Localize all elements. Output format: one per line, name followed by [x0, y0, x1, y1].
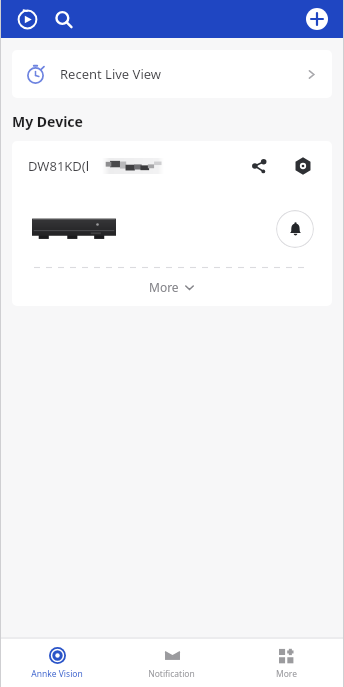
button[interactable]: Notification [114, 639, 229, 687]
button[interactable]: Recent Live View [12, 50, 332, 98]
button[interactable]: Search [48, 4, 78, 34]
button[interactable]: Annke Vision [0, 639, 114, 687]
staticText: Notification [148, 668, 195, 680]
button[interactable]: Add device [302, 4, 332, 34]
staticText: More [149, 279, 179, 295]
button[interactable]: Settings [288, 151, 318, 181]
button[interactable]: More [229, 639, 344, 687]
staticText: More [276, 668, 297, 680]
button[interactable]: Share [244, 151, 274, 181]
staticText: DW81KD(l [28, 157, 90, 175]
button[interactable]: Live view [12, 4, 42, 34]
staticText: Annke Vision [31, 668, 83, 680]
staticText: My Device [12, 112, 83, 131]
staticText: Recent Live View [60, 65, 162, 83]
button[interactable]: Alarm notification [276, 210, 314, 248]
button[interactable]: More [12, 268, 332, 306]
